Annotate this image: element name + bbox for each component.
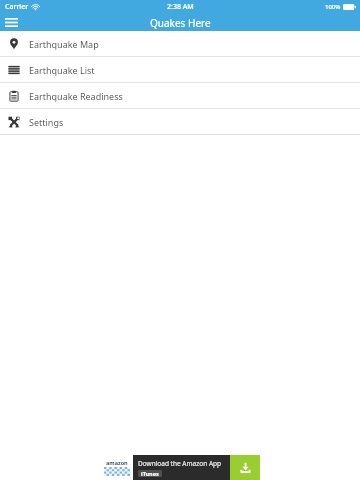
staticText: 2:38 AM [167,2,194,12]
staticText: 100% [325,3,341,11]
staticText: amazon [106,459,128,466]
staticText: iTunes [141,470,159,477]
staticText: Earthquake Map [29,38,99,50]
button[interactable]: Earthquake Map [0,31,360,56]
button[interactable]: Open navigation menu [0,14,22,31]
staticText: Carrier [5,2,29,12]
staticText: Download the Amazon App [138,459,222,468]
staticText: Settings [29,116,64,128]
staticText: Quakes Here [150,16,211,30]
staticText: Earthquake Readiness [29,90,123,102]
button[interactable]: Settings [0,109,360,134]
button[interactable]: Earthquake Readiness [0,83,360,108]
button[interactable]: Download the Amazon App advertisement [100,455,260,480]
button[interactable]: Earthquake List [0,57,360,82]
staticText: Earthquake List [29,64,95,76]
